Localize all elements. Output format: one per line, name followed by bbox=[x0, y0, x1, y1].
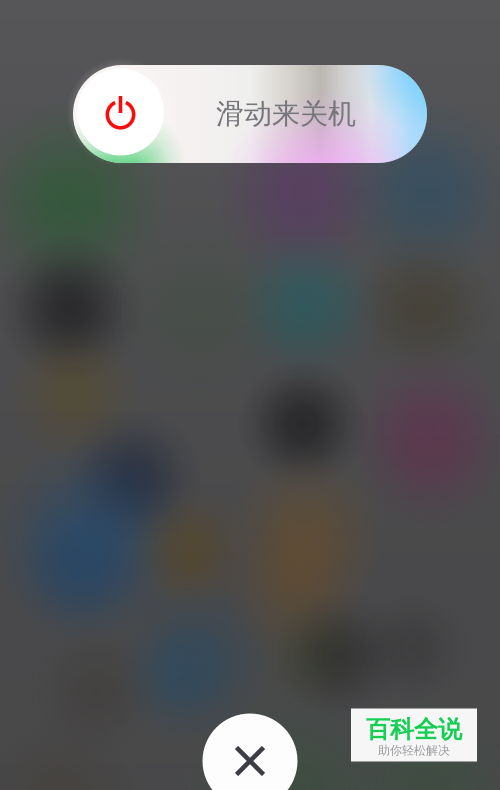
staticText: 百科全说 bbox=[366, 715, 462, 744]
staticText: 助你轻松解决 bbox=[378, 743, 450, 758]
button[interactable]: 滑动来关机 bbox=[73, 65, 427, 163]
staticText: 滑动来关机 bbox=[216, 97, 356, 131]
button[interactable]: Cancel bbox=[202, 713, 297, 790]
